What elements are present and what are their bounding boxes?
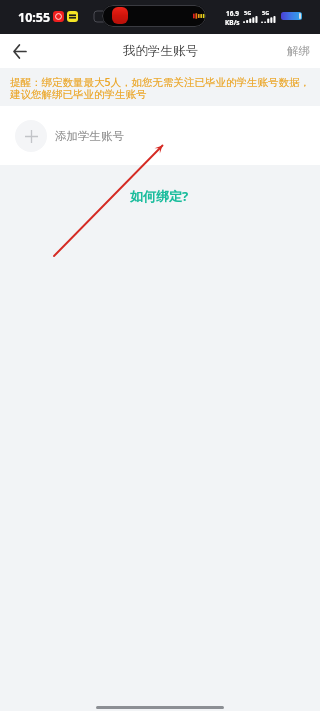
staticText: 添加学生账号 <box>55 129 124 143</box>
staticText: 如何绑定? <box>130 187 189 205</box>
staticText: 5G <box>262 9 270 16</box>
staticText: 5G <box>244 9 252 16</box>
button[interactable]: Back <box>0 34 40 68</box>
staticText: 10:55 <box>18 9 51 26</box>
staticText: 我的学生账号 <box>123 43 198 59</box>
button[interactable]: 添加学生账号 <box>0 106 320 165</box>
staticText: 16.9 <box>226 9 239 18</box>
button[interactable]: 如何绑定? <box>130 187 189 205</box>
staticText: 解绑 <box>287 44 310 58</box>
button[interactable]: 解绑 <box>277 34 320 68</box>
staticText: 提醒：绑定数量最大5人，如您无需关注已毕业的学生账号数据， 建议您解绑已毕业的学… <box>10 75 311 101</box>
staticText: KB/s <box>225 18 240 27</box>
